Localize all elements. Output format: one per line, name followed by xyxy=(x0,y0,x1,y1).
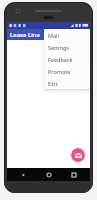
staticText: Mail xyxy=(48,32,59,39)
staticText: Exit xyxy=(48,80,58,87)
staticText: Settings xyxy=(48,44,69,51)
button[interactable]: Compose mail xyxy=(71,148,85,162)
button[interactable]: Home xyxy=(39,168,59,181)
button[interactable]: Feedback xyxy=(44,53,90,65)
button[interactable]: Lease Line xyxy=(7,29,90,40)
button[interactable]: Settings xyxy=(44,41,90,53)
button[interactable]: Exit xyxy=(44,77,90,89)
button[interactable]: Mail xyxy=(44,29,90,41)
button[interactable]: Back xyxy=(13,168,33,181)
staticText: Lease Line xyxy=(10,31,41,39)
staticText: Feedback xyxy=(48,56,73,63)
button[interactable]: Promote xyxy=(44,65,90,77)
staticText: Promote xyxy=(48,68,71,75)
button[interactable]: Recent apps xyxy=(64,168,84,181)
